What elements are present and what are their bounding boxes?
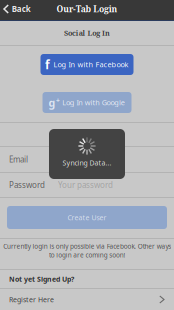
staticText: Create User bbox=[67, 213, 106, 222]
staticText: + bbox=[56, 96, 60, 105]
staticText: g bbox=[48, 95, 55, 110]
staticText: Syncing Data... bbox=[62, 158, 111, 167]
button[interactable]: g bbox=[42, 92, 131, 113]
staticText: Back bbox=[12, 4, 31, 14]
staticText: Register Here bbox=[9, 295, 54, 304]
button[interactable]: f bbox=[40, 54, 133, 75]
staticText: Your email bbox=[58, 154, 97, 165]
button[interactable]: Create User bbox=[7, 206, 167, 229]
button[interactable]: Back bbox=[0, 0, 37, 20]
staticText: Log In with Google bbox=[62, 97, 125, 107]
staticText: Log In with Facebook bbox=[53, 59, 128, 69]
button[interactable]: Register Here bbox=[0, 289, 174, 310]
staticText: Your password bbox=[58, 180, 113, 190]
staticText: f bbox=[45, 56, 50, 73]
staticText: Social Log In bbox=[64, 28, 110, 38]
staticText: Our-Tab Login bbox=[56, 3, 118, 15]
staticText: Email bbox=[9, 154, 28, 165]
staticText: Password bbox=[9, 180, 45, 190]
staticText: Currently login is only possible via Fac… bbox=[3, 242, 171, 259]
staticText: Not yet Signed Up? bbox=[9, 274, 74, 284]
